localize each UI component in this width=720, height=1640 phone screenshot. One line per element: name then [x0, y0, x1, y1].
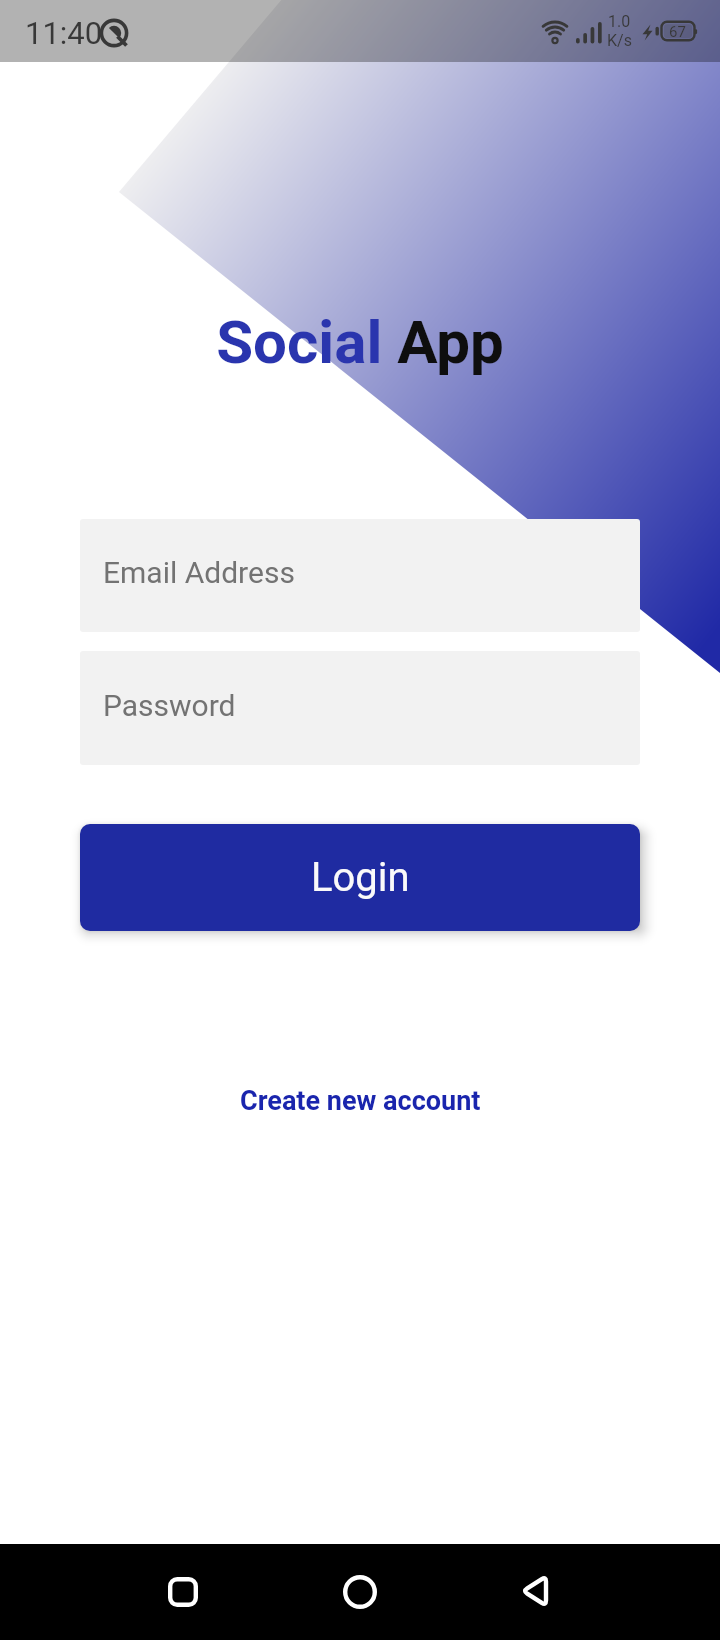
- button[interactable]: Login: [80, 824, 640, 931]
- button[interactable]: Create new account: [240, 1085, 481, 1117]
- button[interactable]: [519, 1574, 553, 1608]
- button[interactable]: [343, 1575, 377, 1609]
- staticText: Password: [103, 688, 236, 723]
- staticText: Social App: [0, 307, 720, 377]
- button[interactable]: [168, 1577, 198, 1607]
- button[interactable]: Email Address: [80, 519, 640, 632]
- staticText: K/s: [607, 31, 632, 50]
- staticText: 11:40: [25, 15, 103, 51]
- staticText: Login: [311, 854, 410, 901]
- staticText: 67: [669, 23, 686, 41]
- staticText: Email Address: [103, 555, 295, 590]
- button[interactable]: Password: [80, 651, 640, 765]
- staticText: 1.0: [608, 12, 631, 31]
